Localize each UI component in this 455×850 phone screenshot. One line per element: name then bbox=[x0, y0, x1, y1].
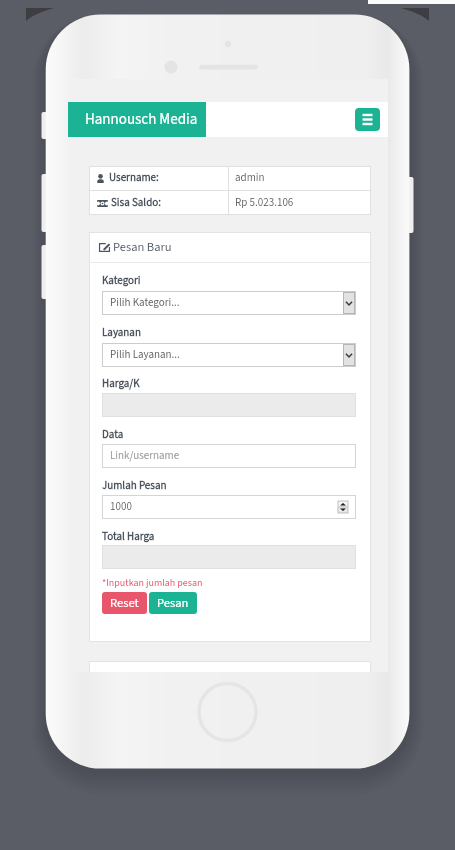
staticText: Total Harga bbox=[102, 529, 155, 545]
staticText: Layanan bbox=[102, 325, 141, 341]
staticText: 1000 bbox=[110, 499, 132, 515]
button[interactable]: Pesan bbox=[149, 592, 197, 614]
staticText: Username: bbox=[109, 170, 159, 186]
button[interactable]: Pilih Layanan... bbox=[102, 343, 356, 367]
staticText: Harga/K bbox=[102, 376, 140, 392]
button[interactable]: Reset bbox=[102, 592, 147, 614]
staticText: Rp 5.023.106 bbox=[235, 195, 294, 211]
staticText: *Inputkan jumlah pesan bbox=[102, 576, 203, 590]
staticText: Sisa Saldo: bbox=[111, 195, 161, 211]
staticText: Kategori bbox=[102, 273, 141, 289]
button[interactable]: Pilih Kategori... bbox=[102, 291, 356, 315]
staticText: Pesan bbox=[157, 594, 189, 612]
staticText: Pilih Layanan... bbox=[110, 347, 180, 363]
staticText: Reset bbox=[110, 594, 139, 612]
staticText: Hannousch Media bbox=[85, 109, 198, 130]
button[interactable]: Menu bbox=[355, 108, 380, 131]
staticText: admin bbox=[235, 170, 265, 186]
staticText: Link/username bbox=[110, 448, 180, 464]
staticText: Pilih Kategori... bbox=[110, 295, 180, 311]
button[interactable]: Hannousch Media bbox=[68, 102, 206, 137]
staticText: Pesan Baru bbox=[113, 238, 172, 256]
staticText: Jumlah Pesan bbox=[102, 478, 167, 494]
staticText: Data bbox=[102, 427, 124, 443]
